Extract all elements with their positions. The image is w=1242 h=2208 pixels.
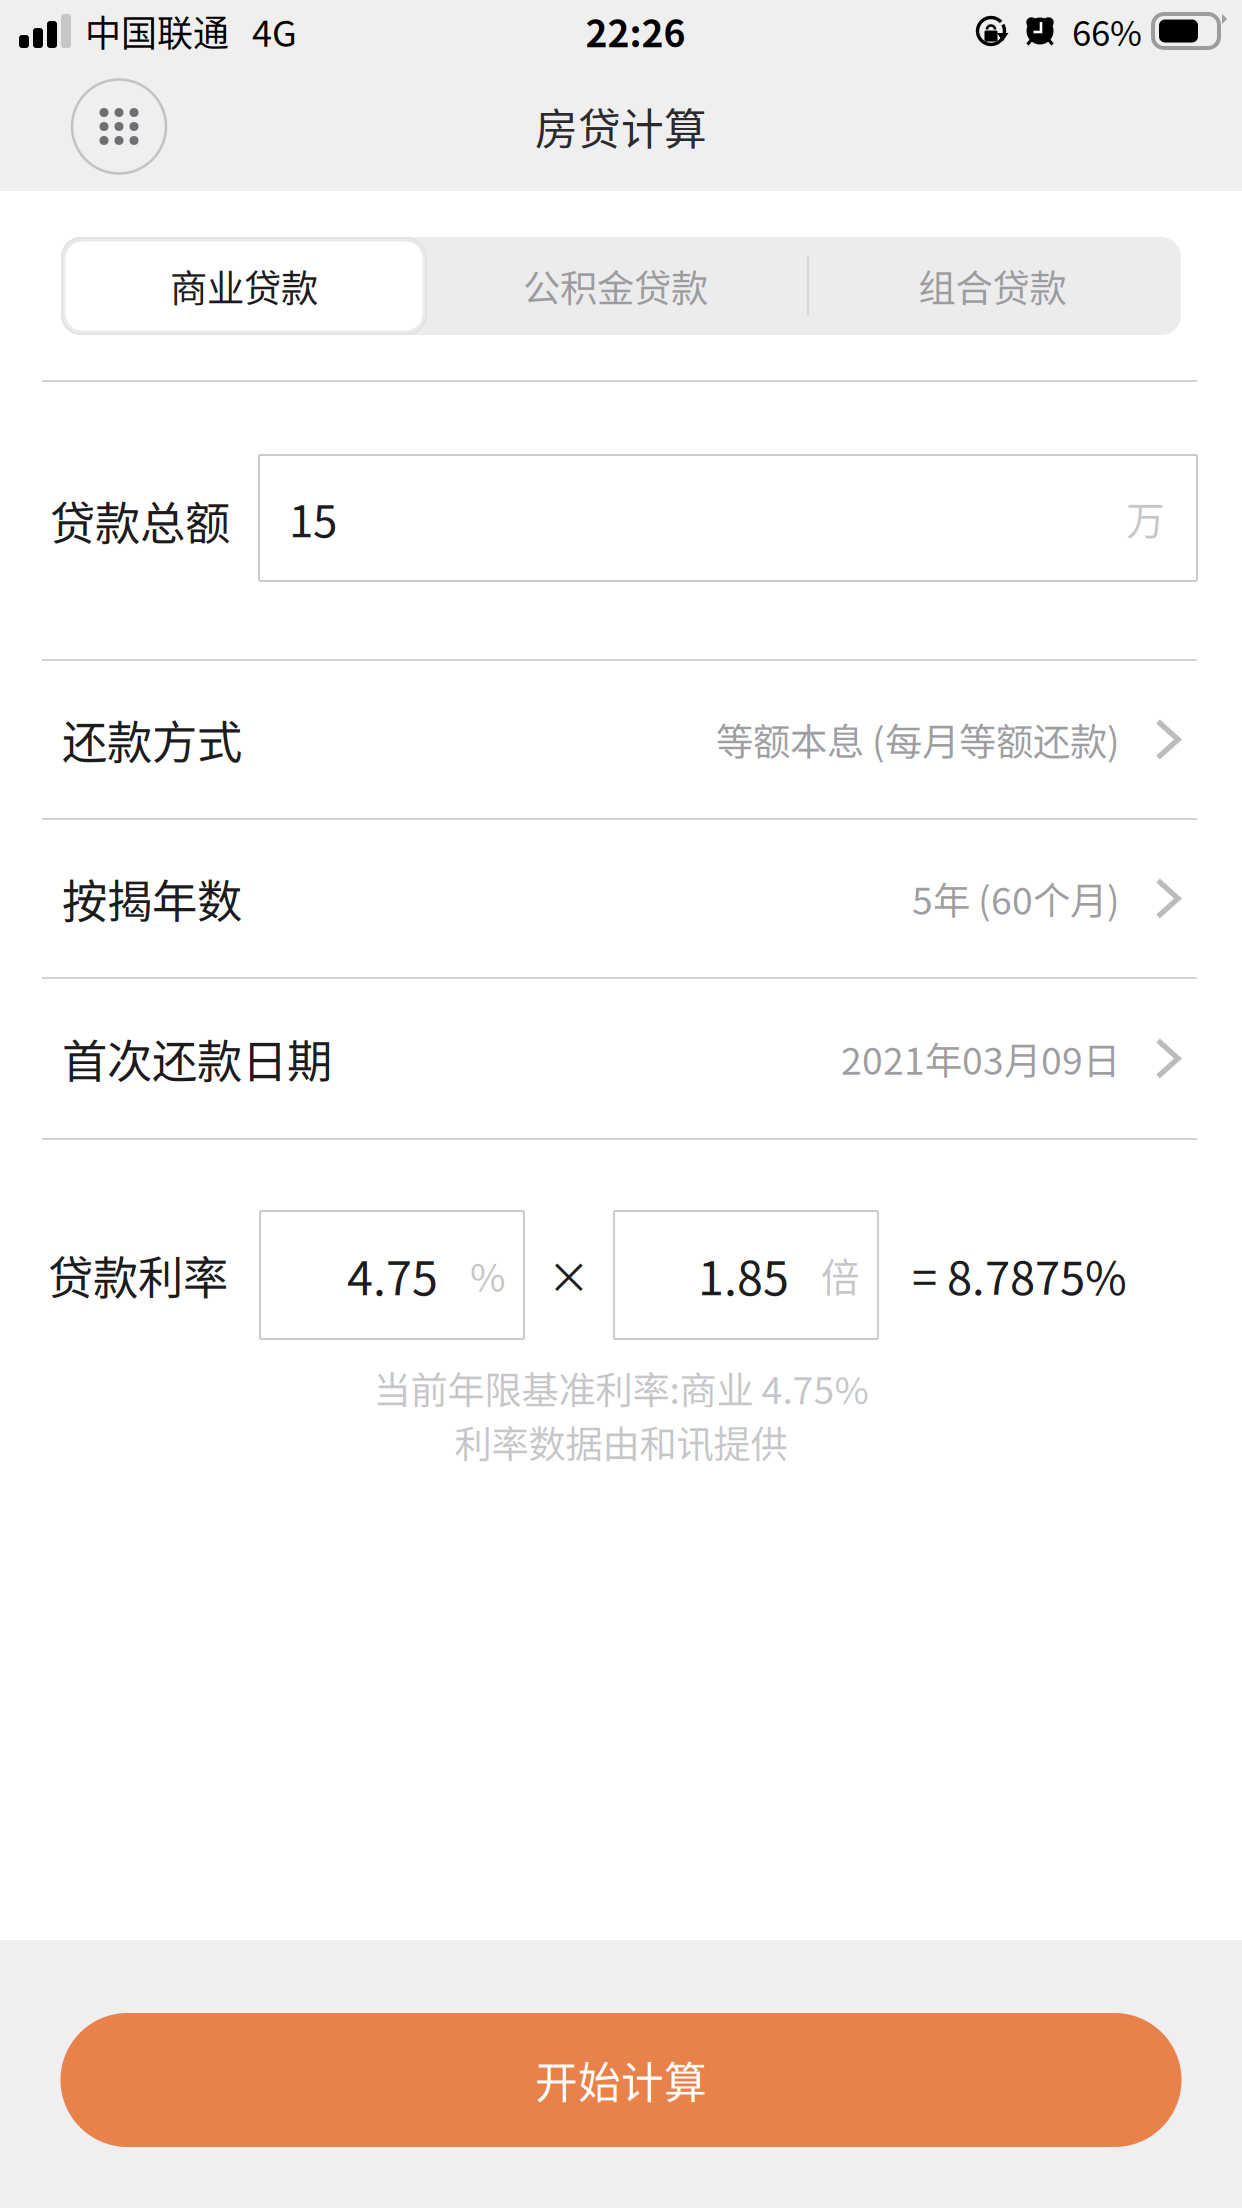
staticText: 4G xyxy=(252,5,297,57)
staticText: 还款方式 xyxy=(62,707,242,772)
staticText: 等额本息 (每月等额还款) xyxy=(716,712,1120,767)
staticText: 4.75 xyxy=(347,1241,438,1309)
staticText: 万 xyxy=(1126,490,1165,546)
button[interactable]: Apps xyxy=(72,79,166,173)
staticText: 66% xyxy=(1072,6,1142,56)
button[interactable]: 组合贷款 xyxy=(804,237,1181,335)
staticText: 利率数据由和讯提供 xyxy=(454,1415,787,1469)
staticText: % xyxy=(470,1247,506,1303)
staticText: 15 xyxy=(289,486,337,550)
staticText: 当前年限基准利率:商业 4.75% xyxy=(373,1361,868,1415)
staticText: 按揭年数 xyxy=(62,866,242,931)
staticText: 首次还款日期 xyxy=(62,1026,332,1091)
staticText: 公积金贷款 xyxy=(523,259,708,313)
staticText: 倍 xyxy=(821,1247,860,1303)
staticText: 贷款总额 xyxy=(50,488,230,553)
button[interactable]: 公积金贷款 xyxy=(427,237,804,335)
staticText: = 8.7875% xyxy=(912,1242,1127,1308)
button[interactable]: 还款方式 xyxy=(0,661,1242,818)
staticText: 2021年03月09日 xyxy=(841,1031,1120,1086)
staticText: 中国联通 xyxy=(85,5,229,57)
button[interactable]: 首次还款日期 xyxy=(0,979,1242,1138)
staticText: 5年 (60个月) xyxy=(912,871,1120,926)
button[interactable]: 商业贷款 xyxy=(61,237,427,335)
button[interactable]: 开始计算 xyxy=(60,2013,1181,2147)
staticText: 1.85 xyxy=(698,1241,789,1309)
staticText: 开始计算 xyxy=(535,2049,707,2111)
button[interactable]: 按揭年数 xyxy=(0,820,1242,977)
staticText: 组合贷款 xyxy=(918,259,1066,313)
staticText: 房贷计算 xyxy=(535,96,707,157)
staticText: 商业贷款 xyxy=(170,259,318,313)
staticText: × xyxy=(547,1244,590,1306)
staticText: 贷款利率 xyxy=(48,1242,228,1308)
staticText: 22:26 xyxy=(585,4,685,58)
